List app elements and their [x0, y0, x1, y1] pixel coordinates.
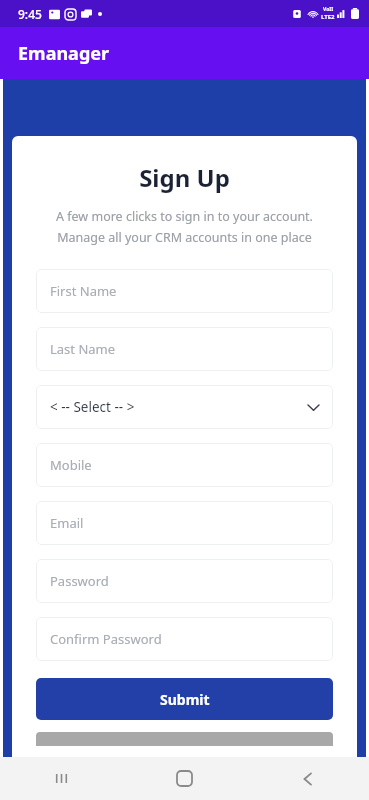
other: Open dropdown [308, 404, 319, 411]
button[interactable]: Confirm Password [36, 617, 333, 661]
button[interactable]: Back [246, 757, 369, 800]
staticText: LTE2 [321, 13, 335, 21]
staticText: Password [50, 572, 109, 590]
button[interactable]: Email [36, 501, 333, 545]
staticText: 9:45 [18, 6, 42, 22]
button[interactable]: Recent apps [0, 757, 123, 800]
button[interactable]: Mobile [36, 443, 333, 487]
button[interactable]: First Name [36, 269, 333, 313]
staticText: Submit [160, 690, 210, 709]
staticText: Sign Up [36, 161, 333, 194]
staticText: Last Name [50, 340, 116, 358]
staticText: Emanager [18, 41, 110, 66]
staticText: Mobile [50, 456, 92, 474]
button[interactable]: Last Name [36, 327, 333, 371]
staticText: VoII [323, 6, 334, 13]
button[interactable]: Home [123, 757, 246, 800]
button[interactable]: < -- Select -- > [36, 385, 333, 429]
staticText: < -- Select -- > [50, 398, 308, 416]
staticText: A few more clicks to sign in to your acc… [36, 208, 333, 246]
staticText: First Name [50, 282, 117, 300]
staticText: Confirm Password [50, 630, 162, 648]
staticText: Email [50, 514, 84, 532]
button[interactable]: Submit [36, 678, 333, 720]
button[interactable]: Password [36, 559, 333, 603]
